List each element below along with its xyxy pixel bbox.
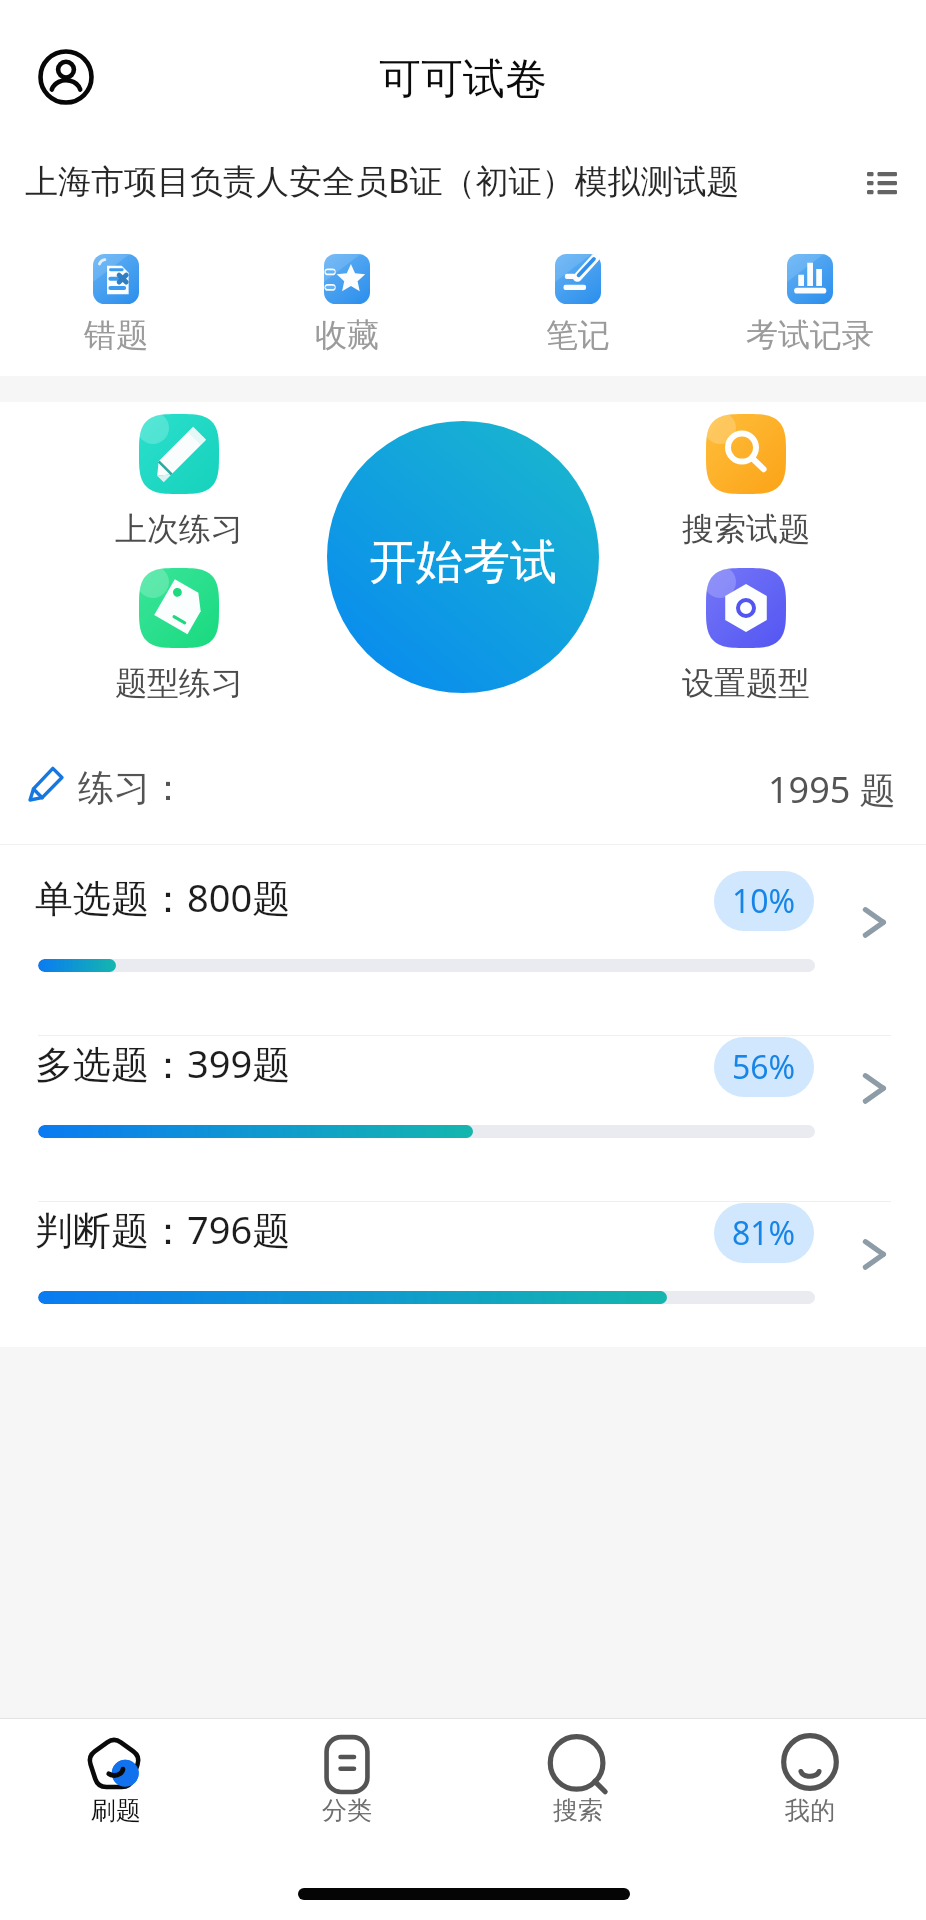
button[interactable]: 搜索 (462, 1719, 694, 1826)
button[interactable]: 开始考试 (327, 421, 599, 693)
button[interactable]: 多选题：399题 (0, 1035, 926, 1201)
staticText: 可可试卷 (379, 53, 547, 106)
staticText: 开始考试 (369, 533, 557, 592)
button[interactable]: 考试记录 (694, 240, 926, 355)
button[interactable]: 判断题：796题 (0, 1201, 926, 1367)
staticText: 分类 (322, 1795, 372, 1826)
staticText: 上海市项目负责人安全员B证（初证）模拟测试题 (25, 158, 740, 203)
button[interactable]: 错题 (0, 240, 231, 355)
staticText: 搜索 (553, 1795, 603, 1826)
button[interactable]: Question list (856, 155, 908, 207)
staticText: 搜索试题 (682, 509, 810, 549)
button[interactable]: 搜索试题 (666, 414, 826, 549)
staticText: 练习： (78, 765, 186, 810)
staticText: 单选题：800题 (35, 871, 291, 923)
staticText: 笔记 (546, 315, 610, 355)
staticText: 多选题：399题 (35, 1037, 291, 1089)
button[interactable]: 我的 (694, 1719, 926, 1826)
staticText: 81% (732, 1211, 796, 1255)
button[interactable]: 笔记 (462, 240, 694, 355)
staticText: 1995 题 (768, 765, 896, 814)
button[interactable]: 设置题型 (666, 568, 826, 703)
staticText: 56% (732, 1045, 796, 1089)
button[interactable]: 分类 (231, 1719, 462, 1826)
staticText: 我的 (785, 1795, 835, 1826)
staticText: 收藏 (315, 315, 379, 355)
staticText: 题型练习 (115, 663, 243, 703)
staticText: 设置题型 (682, 663, 810, 703)
staticText: 错题 (84, 315, 148, 355)
staticText: 10% (732, 879, 796, 923)
staticText: 考试记录 (746, 315, 874, 355)
staticText: 判断题：796题 (35, 1203, 291, 1255)
staticText: 刷题 (91, 1795, 141, 1826)
button[interactable]: 单选题：800题 (0, 869, 926, 1035)
button[interactable]: 题型练习 (99, 568, 259, 703)
button[interactable]: 收藏 (231, 240, 462, 355)
button[interactable]: 上次练习 (99, 414, 259, 549)
staticText: 上次练习 (115, 509, 243, 549)
button[interactable]: 刷题 (0, 1719, 231, 1826)
button[interactable]: Account (33, 43, 99, 109)
